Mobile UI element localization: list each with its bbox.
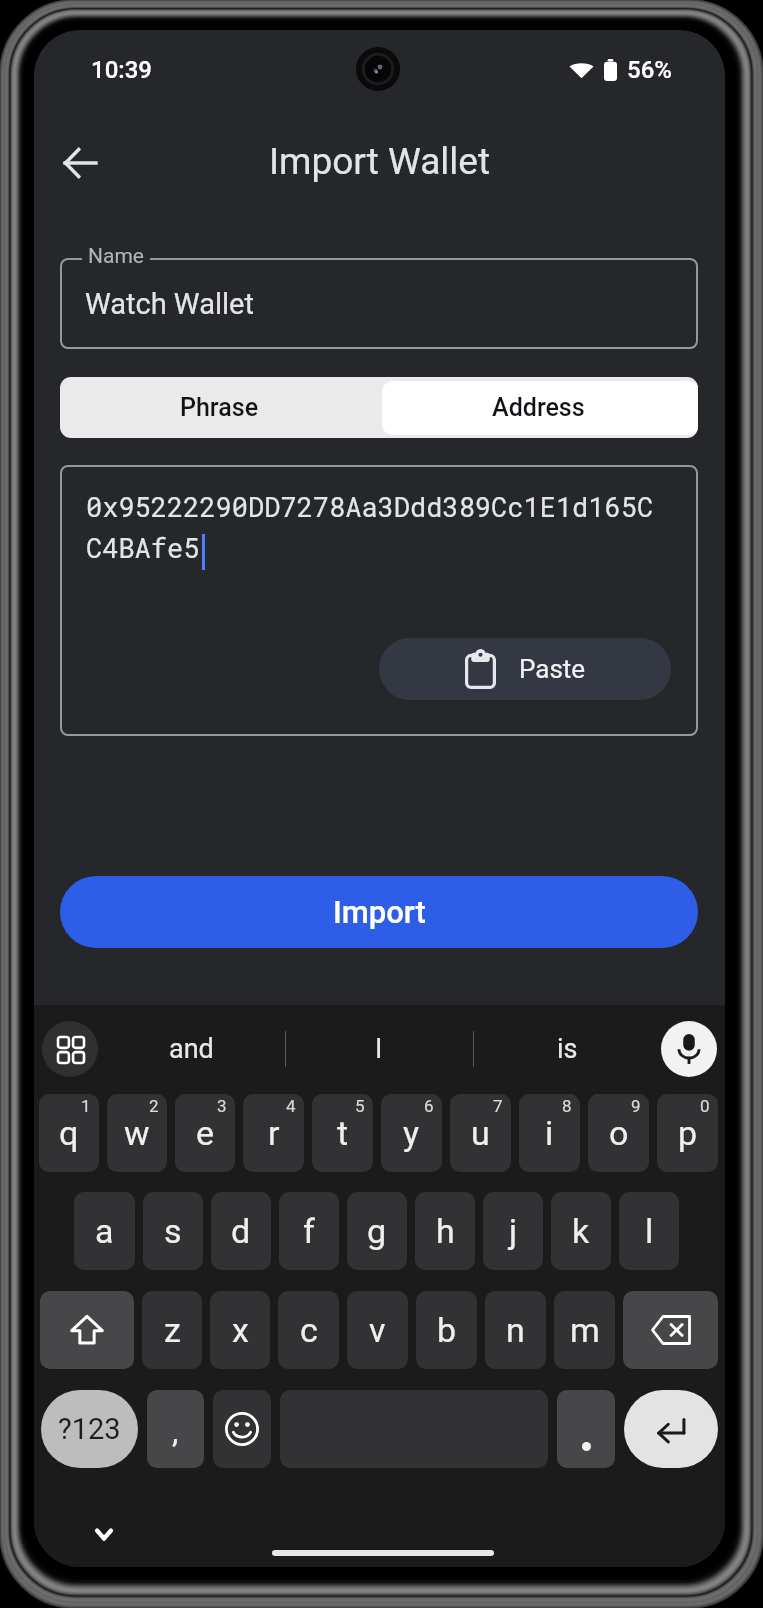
- button[interactable]: Emoji: [213, 1390, 271, 1468]
- staticText: v: [369, 1310, 386, 1350]
- staticText: z: [164, 1310, 181, 1350]
- staticText: y: [403, 1113, 420, 1153]
- staticText: 0x95222290DD7278Aa3Ddd389Cc1E1d165C C4BA…: [86, 489, 654, 565]
- staticText: j: [509, 1211, 518, 1251]
- button[interactable]: Hide keyboard: [74, 1504, 134, 1564]
- staticText: Import Wallet: [34, 140, 725, 183]
- button[interactable]: Paste: [379, 638, 671, 700]
- staticText: 3: [217, 1096, 227, 1116]
- button[interactable]: I: [285, 1005, 473, 1093]
- button[interactable]: v: [347, 1291, 408, 1369]
- button[interactable]: Shift: [40, 1291, 134, 1369]
- button[interactable]: ?123: [41, 1390, 138, 1468]
- staticText: l: [645, 1211, 654, 1251]
- button[interactable]: i: [519, 1094, 580, 1172]
- button[interactable]: f: [279, 1192, 339, 1270]
- staticText: Import: [333, 894, 426, 930]
- button[interactable]: x: [210, 1291, 270, 1369]
- button[interactable]: is: [473, 1005, 661, 1093]
- button[interactable]: c: [278, 1291, 339, 1369]
- staticText: I: [375, 1033, 383, 1065]
- button[interactable]: g: [347, 1192, 407, 1270]
- staticText: f: [303, 1211, 315, 1251]
- staticText: ,: [172, 1412, 179, 1450]
- staticText: q: [59, 1113, 79, 1153]
- staticText: x: [232, 1310, 249, 1350]
- button[interactable]: z: [142, 1291, 202, 1369]
- staticText: 5: [355, 1096, 365, 1116]
- button[interactable]: Import: [60, 876, 698, 948]
- button[interactable]: b: [416, 1291, 477, 1369]
- button[interactable]: t: [312, 1094, 373, 1172]
- staticText: i: [545, 1113, 554, 1153]
- button[interactable]: n: [485, 1291, 546, 1369]
- staticText: t: [337, 1113, 349, 1153]
- button[interactable]: a: [74, 1192, 135, 1270]
- button[interactable]: s: [143, 1192, 203, 1270]
- staticText: 0: [700, 1096, 710, 1116]
- staticText: 7: [493, 1096, 503, 1116]
- button[interactable]: y: [381, 1094, 442, 1172]
- staticText: n: [506, 1310, 525, 1350]
- staticText: e: [196, 1113, 215, 1153]
- button[interactable]: Keyboard switcher: [42, 1021, 98, 1077]
- staticText: m: [570, 1310, 600, 1350]
- staticText: p: [678, 1113, 698, 1153]
- button[interactable]: e: [175, 1094, 235, 1172]
- button[interactable]: and: [98, 1005, 285, 1093]
- button[interactable]: Back: [46, 129, 114, 197]
- staticText: s: [164, 1211, 182, 1251]
- staticText: b: [437, 1310, 457, 1350]
- staticText: 2: [149, 1096, 159, 1116]
- staticText: h: [436, 1211, 455, 1251]
- staticText: k: [572, 1211, 590, 1251]
- staticText: Paste: [519, 654, 586, 684]
- staticText: Address: [492, 393, 585, 422]
- staticText: 9: [631, 1096, 641, 1116]
- staticText: 4: [286, 1096, 296, 1116]
- staticText: 1: [81, 1096, 91, 1116]
- button[interactable]: u: [450, 1094, 511, 1172]
- staticText: 6: [424, 1096, 434, 1116]
- button[interactable]: d: [211, 1192, 271, 1270]
- button[interactable]: ,: [147, 1390, 204, 1468]
- button[interactable]: r: [243, 1094, 304, 1172]
- staticText: w: [124, 1113, 150, 1153]
- button[interactable]: Phrase: [60, 377, 379, 438]
- button[interactable]: m: [554, 1291, 615, 1369]
- staticText: o: [609, 1113, 629, 1153]
- staticText: c: [300, 1310, 318, 1350]
- button[interactable]: l: [619, 1192, 679, 1270]
- staticText: Phrase: [180, 393, 259, 422]
- button[interactable]: j: [483, 1192, 543, 1270]
- button[interactable]: [557, 1390, 615, 1468]
- button[interactable]: k: [551, 1192, 611, 1270]
- button[interactable]: Enter: [624, 1390, 718, 1468]
- button[interactable]: o: [588, 1094, 649, 1172]
- staticText: d: [231, 1211, 251, 1251]
- button[interactable]: q: [39, 1094, 99, 1172]
- staticText: ?123: [58, 1412, 121, 1446]
- staticText: Name: [88, 244, 144, 269]
- staticText: 8: [562, 1096, 572, 1116]
- button[interactable]: Backspace: [623, 1291, 718, 1369]
- button[interactable]: Address: [379, 377, 698, 438]
- button[interactable]: h: [415, 1192, 475, 1270]
- staticText: 10:39: [91, 56, 152, 84]
- staticText: 56%: [627, 56, 672, 84]
- button[interactable]: p: [657, 1094, 718, 1172]
- staticText: a: [95, 1211, 114, 1251]
- staticText: is: [557, 1033, 578, 1065]
- button[interactable]: Voice input: [661, 1021, 717, 1077]
- staticText: r: [268, 1113, 280, 1153]
- staticText: Watch Wallet: [85, 287, 254, 321]
- button[interactable]: w: [107, 1094, 167, 1172]
- staticText: g: [367, 1211, 387, 1251]
- staticText: and: [169, 1033, 214, 1065]
- staticText: u: [471, 1113, 490, 1153]
